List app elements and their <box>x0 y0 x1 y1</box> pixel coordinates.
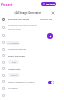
staticText: Select a different AI styling <box>8 81 35 84</box>
staticText: Flow <box>12 61 16 63</box>
button[interactable]: AI styling <box>2 80 5 83</box>
button[interactable]: Flow <box>8 60 19 64</box>
staticText: Square <box>11 74 17 76</box>
button[interactable]: Ratio option <box>2 74 5 77</box>
button[interactable]: Aspect ratio <box>2 67 5 70</box>
button[interactable]: Model <box>2 54 5 57</box>
button[interactable]: Generate <box>47 33 53 39</box>
button[interactable]: Try Gold <box>41 2 56 6</box>
button[interactable]: Close <box>50 10 55 15</box>
button[interactable]: Toggle AI styling <box>48 81 54 84</box>
staticText: Picsart <box>1 2 13 6</box>
button[interactable]: Model option <box>2 61 5 64</box>
button[interactable]: More <box>2 94 5 97</box>
button[interactable]: Back <box>12 10 17 15</box>
staticText: a vintage floral print in pastel <box>8 24 37 27</box>
staticText: + Add keyword <box>7 42 19 44</box>
staticText: cartoon style <box>8 28 21 31</box>
staticText: AI Image Generator <box>16 11 42 15</box>
staticText: Select the model <box>8 55 26 58</box>
staticText: Try Gold <box>46 3 55 6</box>
staticText: Surprise me <box>40 18 53 21</box>
button[interactable]: Advanced settings <box>2 48 5 51</box>
staticText: Aspect ratio <box>8 68 21 71</box>
button[interactable]: Add keyword <box>2 41 5 44</box>
button[interactable]: Style <box>2 34 5 37</box>
staticText: Describe your image <box>8 18 30 21</box>
button[interactable]: + Add keyword <box>6 41 20 45</box>
button[interactable]: Prompt <box>2 26 5 29</box>
button[interactable]: Result <box>2 87 5 90</box>
button[interactable]: Describe <box>2 18 5 21</box>
staticText: Advanced settings <box>8 48 26 51</box>
staticText: No Result <box>8 87 18 90</box>
button[interactable]: Square <box>8 73 20 77</box>
